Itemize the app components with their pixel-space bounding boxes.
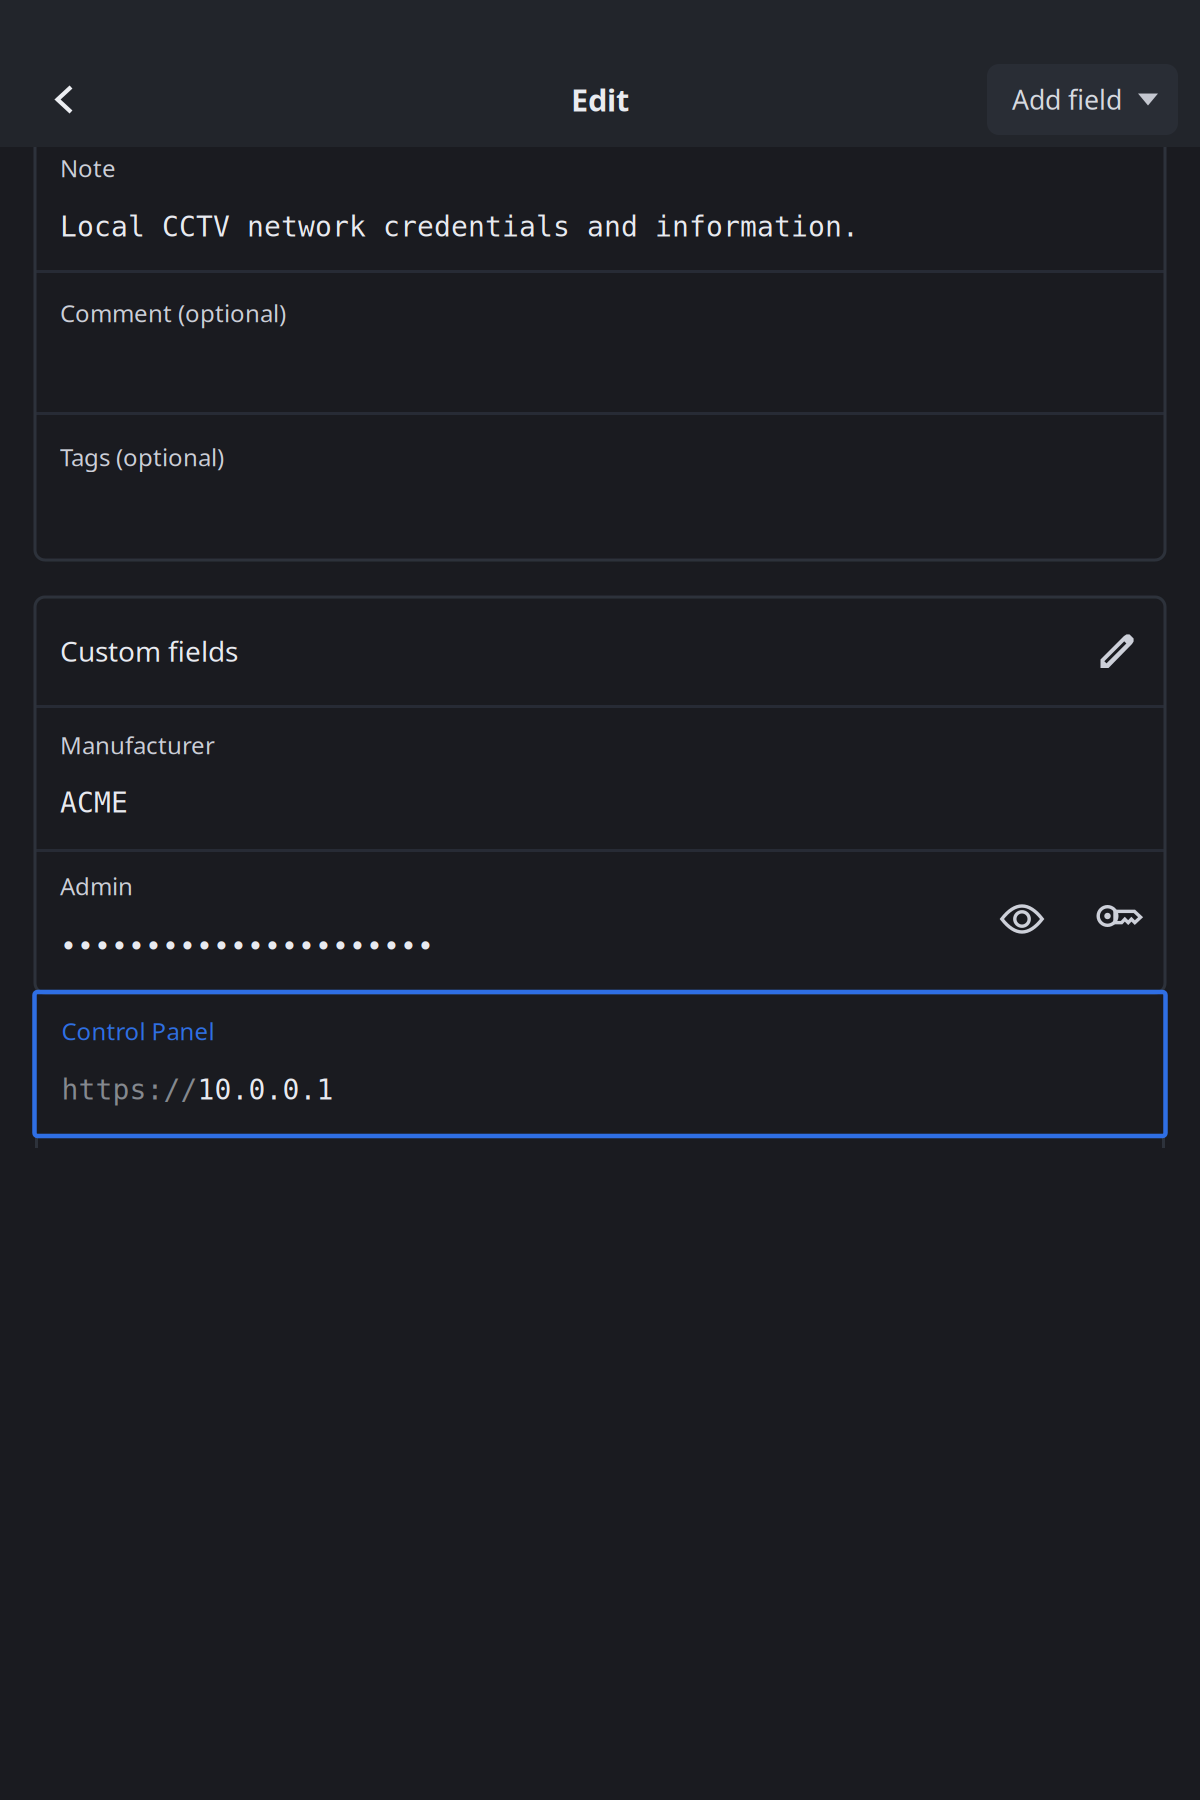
staticText: Comment (optional) [60, 297, 286, 329]
button[interactable]: Manufacturer [35, 708, 1165, 849]
staticText: Control Panel [61, 1015, 214, 1047]
staticText: Local CCTV network credentials and infor… [60, 211, 859, 243]
button[interactable]: Back [0, 67, 103, 132]
button[interactable]: Control Panel [34, 992, 1165, 1136]
button[interactable]: Password generator [1096, 903, 1142, 931]
button[interactable]: Show password [1000, 903, 1044, 935]
button[interactable]: Comment (optional) [35, 273, 1165, 412]
staticText: Custom fields [60, 632, 238, 670]
button[interactable]: Note [35, 107, 1165, 270]
staticText: Note [60, 152, 116, 184]
staticText: https:// [61, 1074, 197, 1106]
button[interactable]: Add field [987, 64, 1178, 135]
button[interactable]: Tags (optional) [35, 415, 1165, 560]
staticText: Add field [1012, 82, 1122, 117]
staticText: •••••••••••••••••••••• [60, 930, 434, 962]
button[interactable]: Admin [60, 852, 434, 993]
staticText: Admin [60, 870, 133, 902]
button[interactable]: Edit custom fields [1081, 620, 1136, 682]
staticText: ACME [60, 787, 128, 819]
staticText: Tags (optional) [60, 441, 224, 473]
staticText: Edit [571, 79, 629, 120]
staticText: 10.0.0.1 [197, 1074, 333, 1106]
staticText: Manufacturer [60, 729, 215, 761]
